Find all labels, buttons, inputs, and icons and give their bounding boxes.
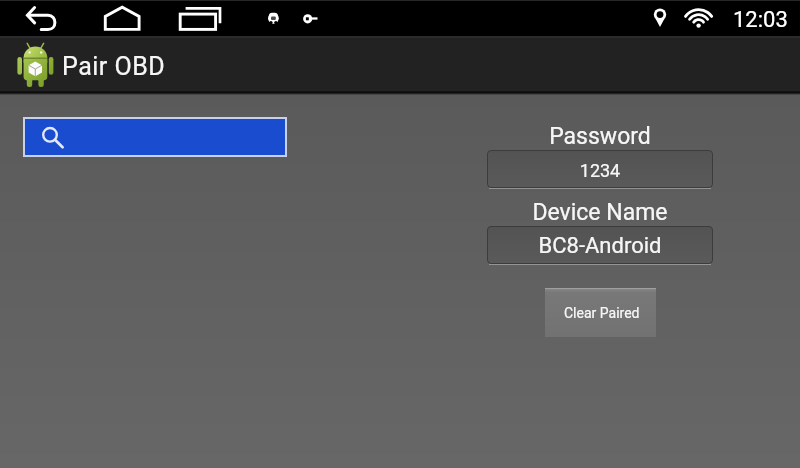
staticText: 1234 — [487, 160, 713, 181]
staticText: BC8-Android — [487, 233, 713, 259]
button[interactable]: 1234 — [487, 150, 713, 188]
staticText: Pair OBD — [62, 52, 166, 81]
button[interactable]: Search for OBD devices — [23, 117, 287, 157]
button[interactable]: Recent apps — [162, 0, 224, 36]
staticText: Device Name — [487, 199, 713, 226]
staticText: Clear Paired — [564, 305, 640, 321]
button[interactable]: Clear Paired — [545, 289, 656, 337]
staticText: Password — [487, 123, 713, 150]
button[interactable]: BC8-Android — [487, 226, 713, 264]
button[interactable]: Back — [0, 0, 88, 36]
staticText: 12:03 — [733, 7, 788, 33]
button[interactable]: Home — [88, 0, 162, 36]
